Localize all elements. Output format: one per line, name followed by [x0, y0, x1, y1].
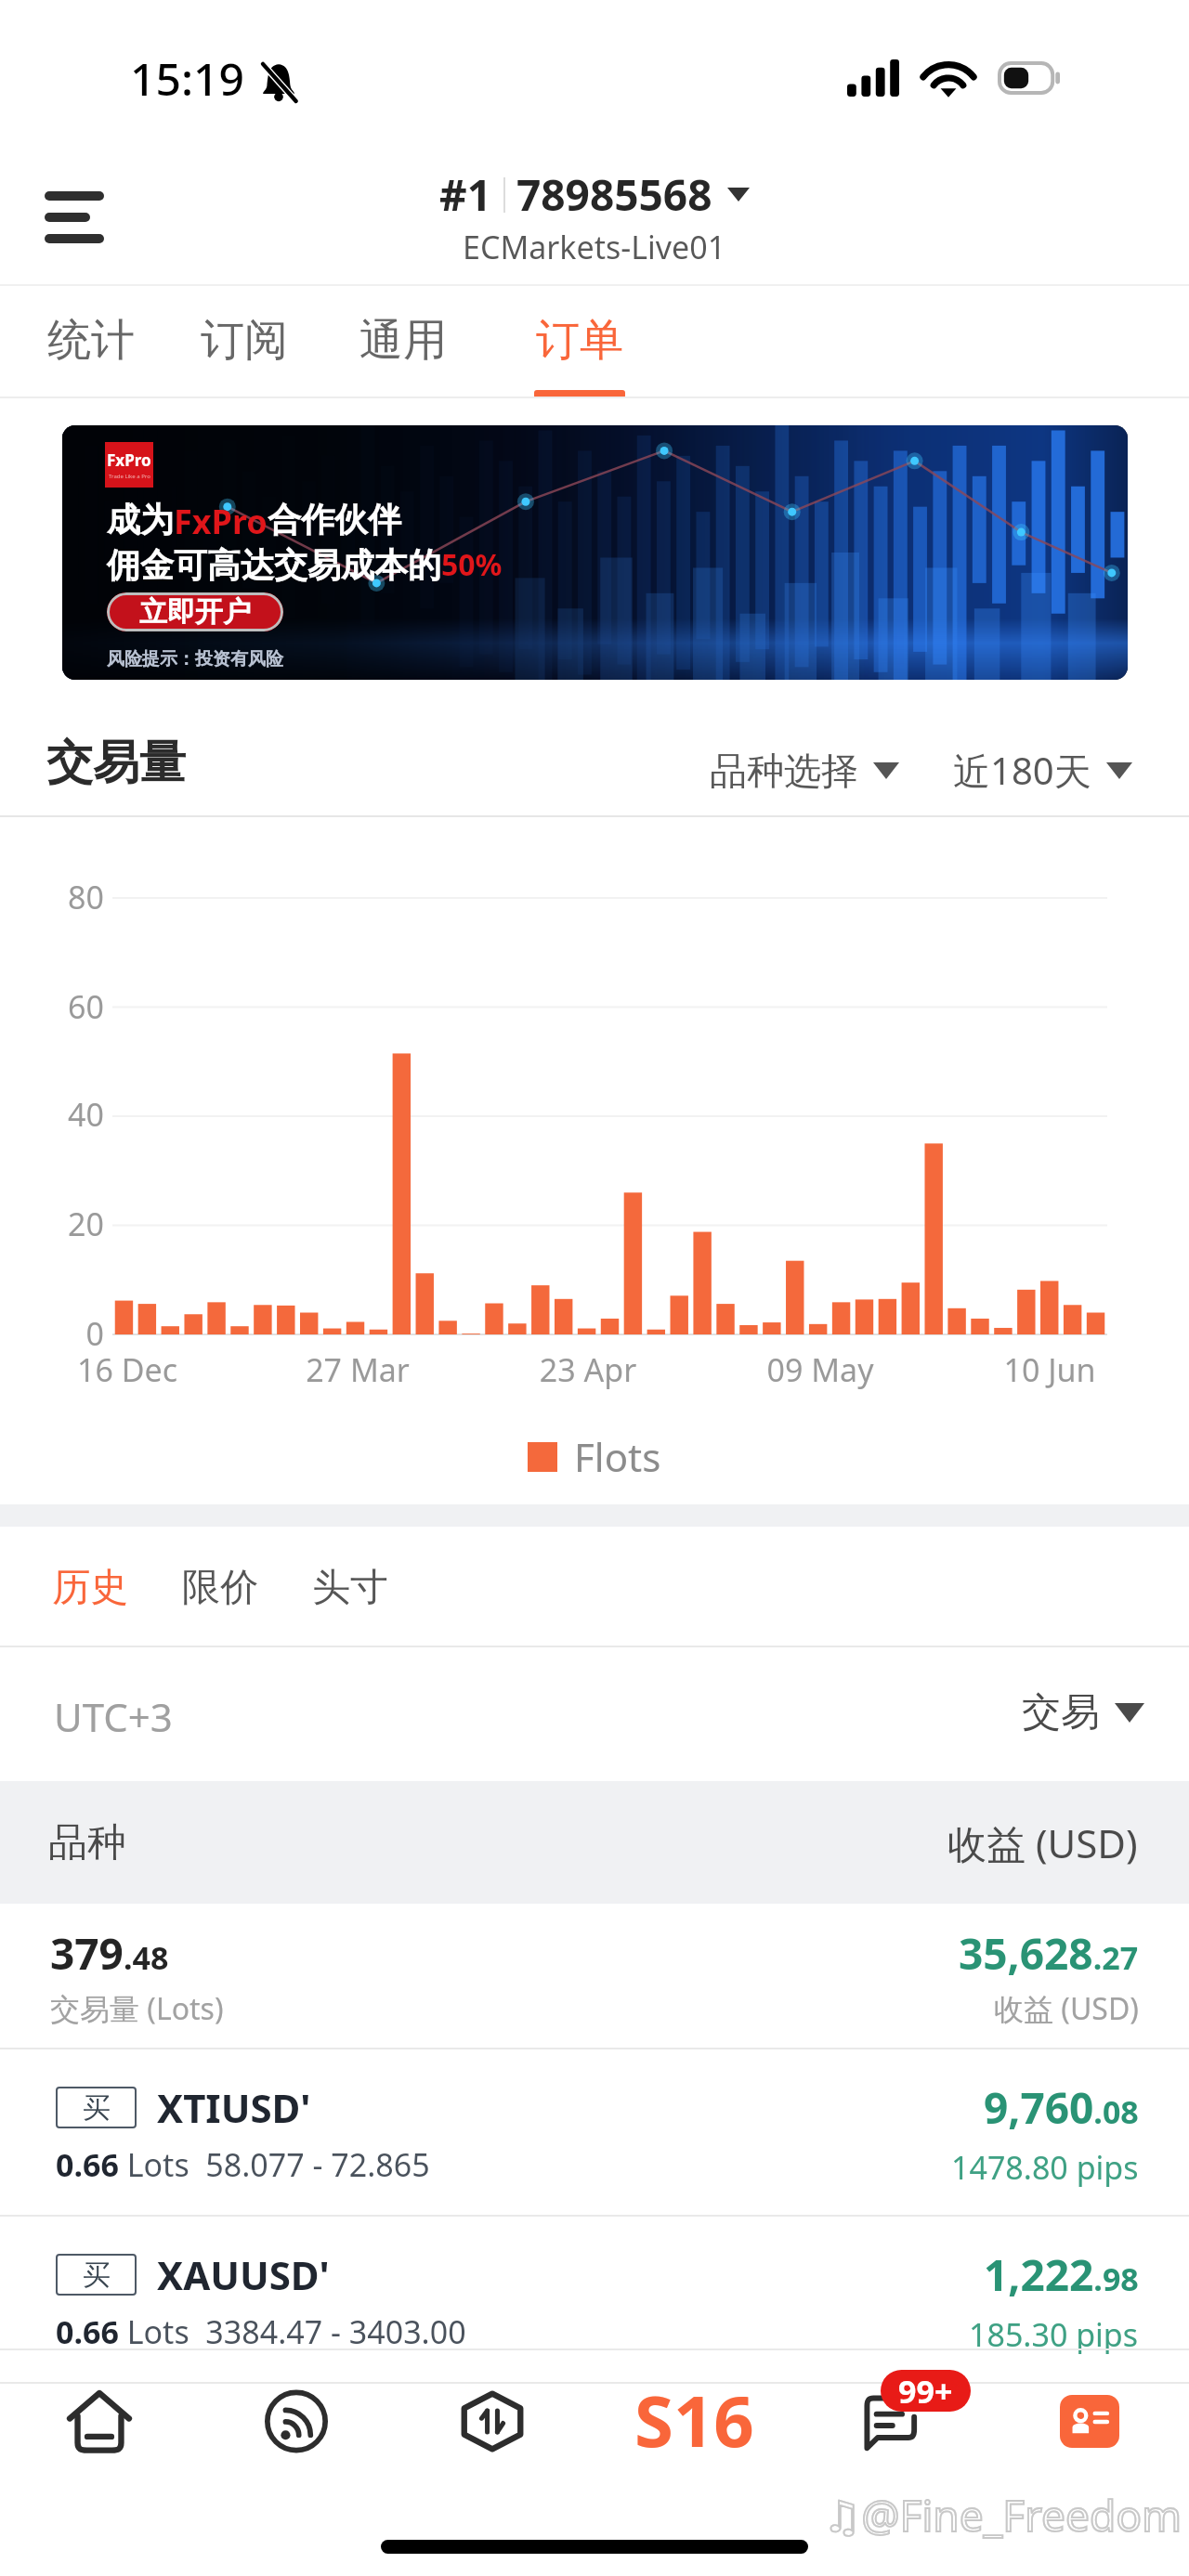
button[interactable]: Account	[1041, 2376, 1138, 2466]
staticText: 成为	[107, 499, 174, 540]
staticText: XTIUSD'	[157, 2081, 311, 2134]
button[interactable]: Menu	[28, 173, 121, 262]
staticText: S16	[634, 2372, 754, 2465]
staticText: 头寸	[312, 1564, 388, 1612]
button[interactable]: 订单	[518, 313, 641, 398]
staticText: 0	[59, 1312, 104, 1355]
staticText: FxPro	[174, 499, 268, 544]
staticText: 99+	[898, 2370, 953, 2412]
button[interactable]: S16	[622, 2372, 766, 2465]
button[interactable]: 通用	[334, 313, 472, 398]
button[interactable]: 品种选择	[699, 736, 910, 805]
button[interactable]: Trade	[442, 2371, 542, 2471]
staticText: 买	[83, 2090, 111, 2126]
staticText: 通用	[359, 313, 447, 368]
staticText: 1478.80 pips	[951, 2146, 1139, 2189]
staticText: #1	[439, 165, 492, 224]
staticText: 185.30 pips	[969, 2313, 1139, 2356]
staticText: 收益 (USD)	[947, 1816, 1138, 1869]
button[interactable]: 统计	[30, 313, 152, 398]
staticText: Trade Like a Pro	[109, 473, 150, 480]
staticText: ♫@Fine_Freedom	[823, 2486, 1182, 2544]
staticText: 近180天	[953, 745, 1091, 796]
staticText: 27 Mar	[283, 1348, 432, 1391]
staticText: 交易量	[46, 734, 186, 792]
button[interactable]: Signals	[246, 2371, 346, 2471]
staticText: 统计	[47, 313, 135, 368]
staticText: 风险提示：投资有风险	[107, 648, 283, 670]
staticText: 订阅	[201, 313, 288, 368]
staticText: 379.48	[50, 1924, 169, 1983]
staticText: ECMarkets-Live01	[463, 226, 726, 268]
staticText: 合作伙伴	[268, 499, 401, 540]
button[interactable]: Home	[49, 2371, 150, 2471]
staticText: 15:19	[130, 48, 244, 109]
staticText: 40	[59, 1093, 104, 1136]
button[interactable]: Messages	[855, 2364, 975, 2461]
staticText: 买	[83, 2257, 111, 2293]
staticText: 限价	[182, 1564, 258, 1612]
staticText: 23 Apr	[514, 1348, 662, 1391]
staticText: 品种	[48, 1818, 126, 1867]
button[interactable]: 买	[0, 2049, 1189, 2217]
staticText: 35,628.27	[959, 1924, 1139, 1983]
button[interactable]: FxPro	[62, 425, 1128, 680]
staticText: FxPro	[107, 449, 151, 471]
staticText: 交易量 (Lots)	[50, 1988, 224, 2029]
staticText: 收益 (USD)	[994, 1988, 1139, 2029]
staticText: 16 Dec	[53, 1348, 202, 1391]
staticText: 佣金可高达交易成本的	[107, 544, 441, 586]
button[interactable]: 头寸	[294, 1537, 407, 1639]
button[interactable]: 历史	[33, 1537, 147, 1639]
staticText: 10 Jun	[975, 1348, 1124, 1391]
staticText: 0.66 Lots 3384.47 - 3403.00	[56, 2310, 466, 2353]
staticText: 9,760.08	[984, 2078, 1139, 2137]
button[interactable]: #1	[439, 165, 750, 224]
staticText: 订单	[536, 313, 623, 368]
staticText: 立即开户	[139, 594, 251, 630]
staticText: 1,222.98	[984, 2245, 1139, 2304]
staticText: UTC+3	[54, 1690, 173, 1743]
staticText: Flots	[574, 1430, 661, 1483]
staticText: 80	[59, 876, 104, 918]
button[interactable]: 限价	[163, 1537, 277, 1639]
staticText: 78985568	[516, 165, 712, 224]
staticText: 20	[59, 1203, 104, 1245]
button[interactable]: 订阅	[183, 313, 306, 398]
staticText: 品种选择	[710, 748, 858, 794]
staticText: 09 May	[746, 1348, 895, 1391]
staticText: 50%	[441, 544, 503, 585]
button[interactable]: 买	[0, 2217, 1189, 2384]
staticText: 交易	[1022, 1688, 1100, 1737]
staticText: 60	[59, 985, 104, 1028]
staticText: 0.66 Lots 58.077 - 72.865	[56, 2143, 430, 2186]
staticText: 历史	[52, 1564, 128, 1612]
button[interactable]: 近180天	[942, 734, 1143, 807]
button[interactable]: 379.48	[0, 1904, 1189, 2049]
button[interactable]: 交易	[1011, 1677, 1156, 1749]
staticText: XAUUSD'	[157, 2248, 330, 2301]
